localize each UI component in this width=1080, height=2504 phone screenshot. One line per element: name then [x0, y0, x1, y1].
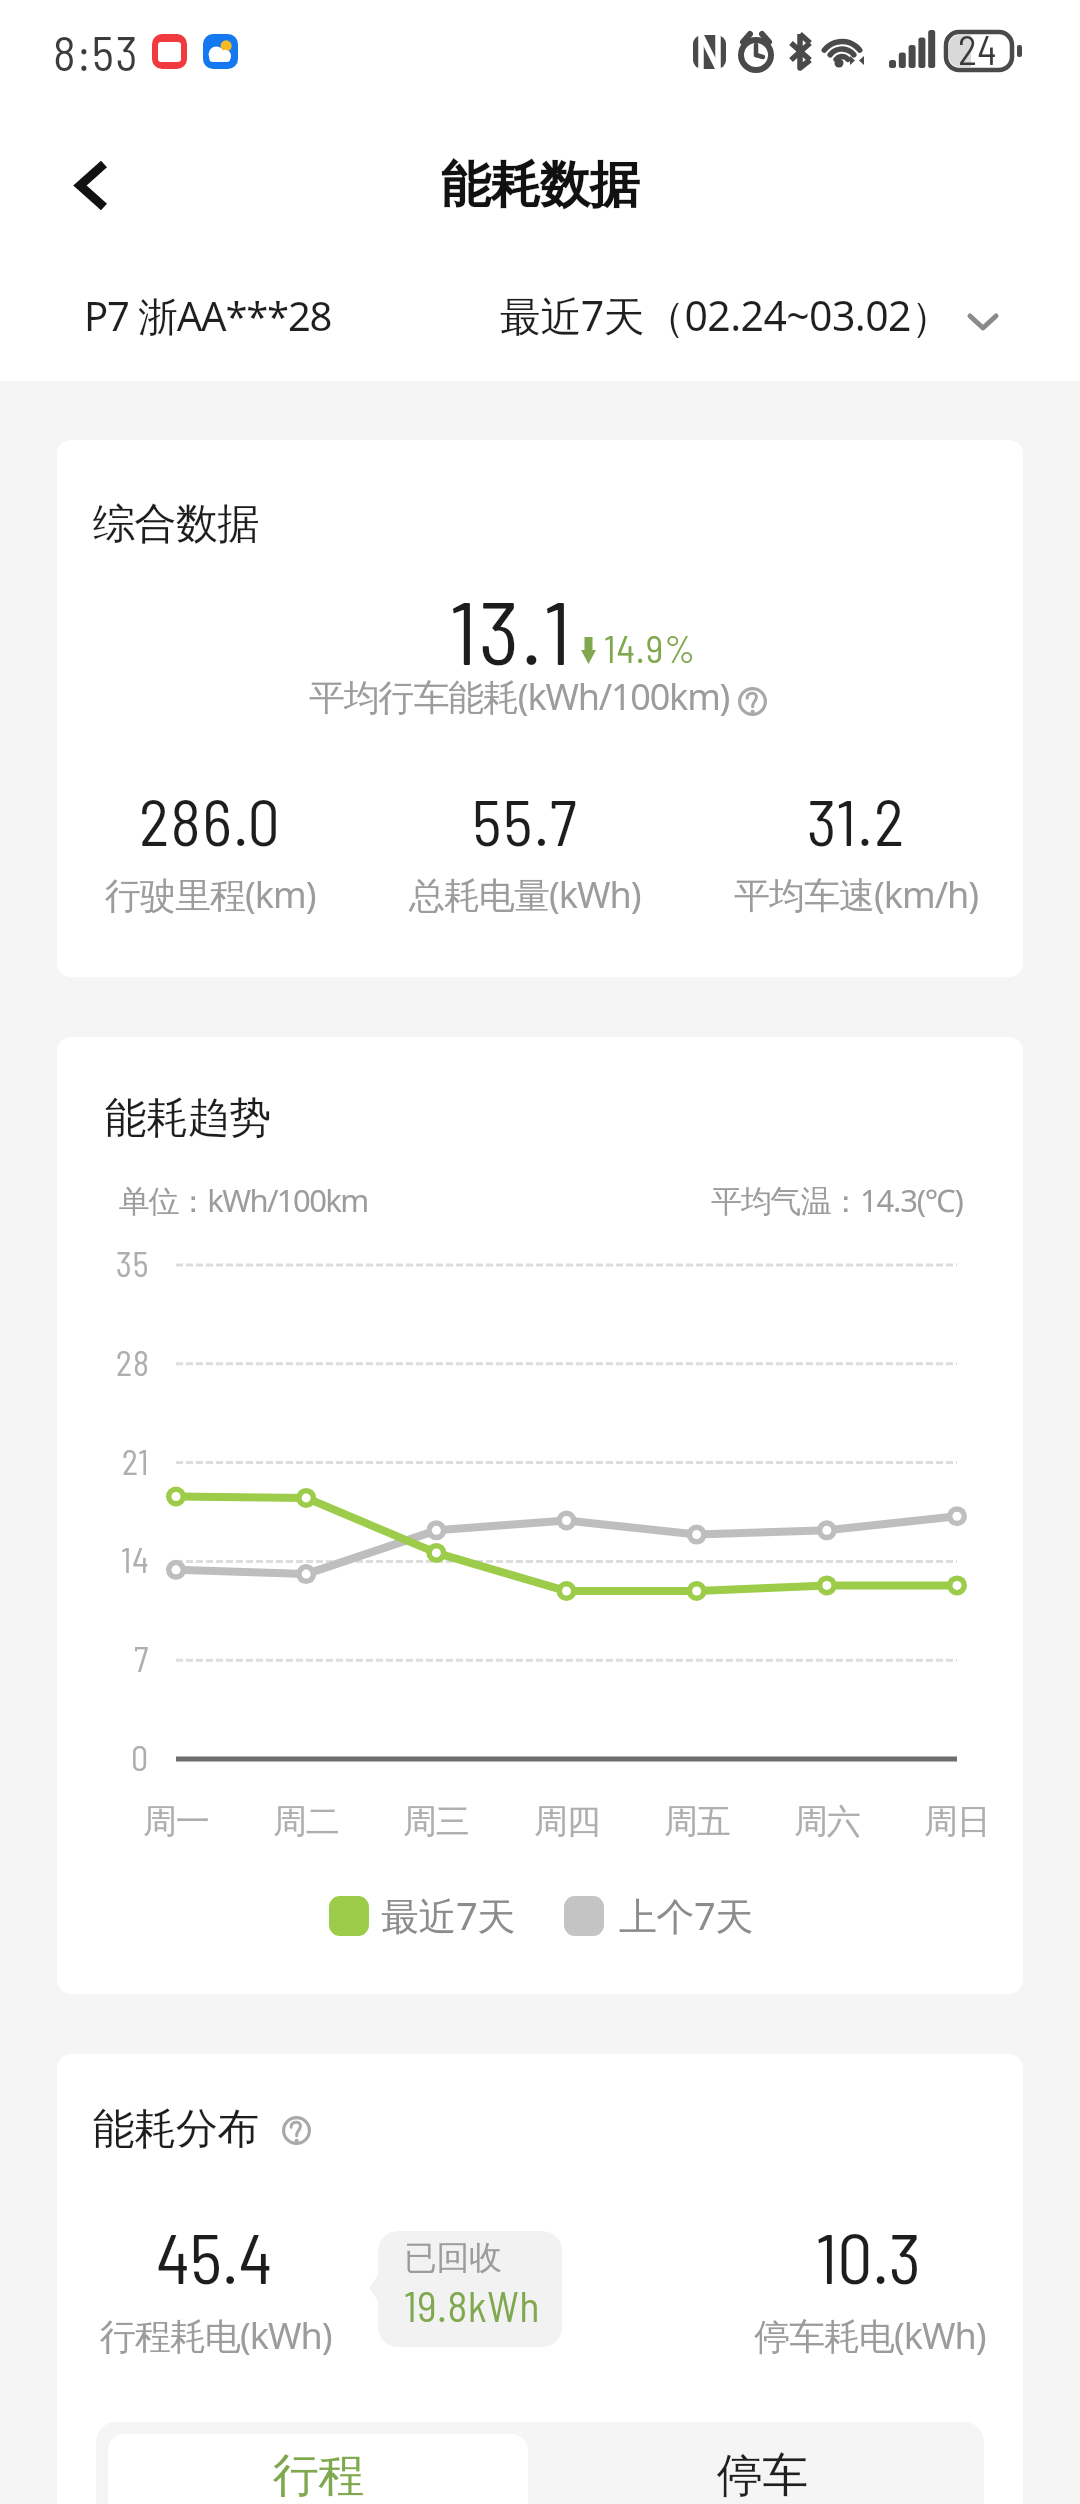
button[interactable]: 行程 [108, 2434, 528, 2504]
staticText: 35 [116, 1243, 150, 1284]
staticText: 周四 [535, 1800, 600, 1843]
staticText: 总耗电量(kWh) [409, 870, 641, 919]
staticText: 周二 [274, 1800, 339, 1843]
staticText: 行驶里程(km) [105, 870, 316, 919]
staticText: 综合数据 [93, 498, 259, 551]
staticText: 55.7 [472, 782, 578, 859]
staticText: P7 浙AA***28 [84, 288, 332, 343]
button[interactable]: Back [46, 140, 138, 232]
staticText: 停车耗电(kWh) [754, 2311, 986, 2360]
staticText: 上个7天 [619, 1889, 753, 1941]
staticText: 45.4 [156, 2214, 273, 2298]
staticText: 7 [134, 1638, 150, 1679]
staticText: 能耗分布 [93, 2103, 259, 2156]
staticText: 31.2 [807, 782, 906, 859]
button[interactable]: 最近7天（02.24~03.02） [482, 265, 1024, 365]
staticText: 周日 [925, 1800, 990, 1843]
staticText: 周五 [665, 1800, 730, 1843]
staticText: 10.3 [816, 2214, 922, 2298]
button[interactable]: 停车 [540, 2422, 984, 2504]
staticText: 13.1 [450, 577, 573, 683]
staticText: 单位：kWh/100km [119, 1179, 368, 1221]
staticText: 行程耗电(kWh) [100, 2311, 332, 2360]
staticText: 21 [122, 1441, 150, 1482]
button[interactable]: Help [738, 687, 767, 716]
staticText: 最近7天 [381, 1889, 515, 1941]
staticText: 19.8kWh [404, 2280, 541, 2330]
button[interactable]: P7 浙AA***28 [66, 265, 350, 365]
staticText: 最近7天（02.24~03.02） [500, 287, 952, 343]
staticText: 286.0 [139, 782, 282, 859]
staticText: 28 [116, 1342, 150, 1383]
staticText: 24 [958, 25, 998, 73]
button[interactable]: Help [282, 2116, 311, 2145]
staticText: 14 [121, 1539, 150, 1580]
staticText: 平均行车能耗(kWh/100km) [309, 672, 730, 721]
staticText: 0 [131, 1737, 150, 1778]
staticText: 已回收 [404, 2237, 502, 2279]
staticText: 周三 [404, 1800, 469, 1843]
staticText: 能耗数据 [441, 154, 639, 217]
staticText: 8:53 [53, 23, 140, 81]
staticText: 14.9% [604, 625, 697, 671]
staticText: 平均车速(km/h) [734, 870, 979, 919]
staticText: 周一 [144, 1800, 209, 1843]
staticText: 停车 [717, 2447, 808, 2504]
staticText: 行程 [273, 2447, 364, 2504]
staticText: 能耗趋势 [105, 1092, 271, 1145]
staticText: 平均气温：14.3(℃) [711, 1179, 963, 1221]
staticText: 周六 [795, 1800, 860, 1843]
